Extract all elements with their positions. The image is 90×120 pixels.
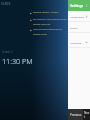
button[interactable]: Language (68, 37, 90, 47)
staticText: Require Theatre - Toggle (33, 11, 59, 14)
button[interactable]: Next (84, 109, 90, 120)
staticText: Previous (70, 113, 82, 117)
staticText: SLIDE (1, 1, 11, 6)
staticText: Language (70, 41, 82, 44)
staticText: Notifications (70, 15, 85, 18)
staticText: Settings (70, 3, 84, 8)
button[interactable]: Settings (68, 0, 90, 11)
button[interactable]: Previous (68, 109, 83, 120)
staticText: 11:30 PM (2, 56, 33, 66)
button[interactable]: Notifications (68, 11, 90, 21)
staticText: Privacy (70, 26, 78, 29)
staticText: Set Timeout: Set a custom time to receiv… (33, 18, 67, 25)
button[interactable]: Privacy (68, 22, 90, 32)
staticText: Lock the limit buttons of the Toggle on/… (33, 28, 62, 35)
button[interactable]: More options (84, 3, 89, 8)
staticText: Next (84, 111, 90, 119)
staticText: Screen 2 (2, 50, 13, 54)
